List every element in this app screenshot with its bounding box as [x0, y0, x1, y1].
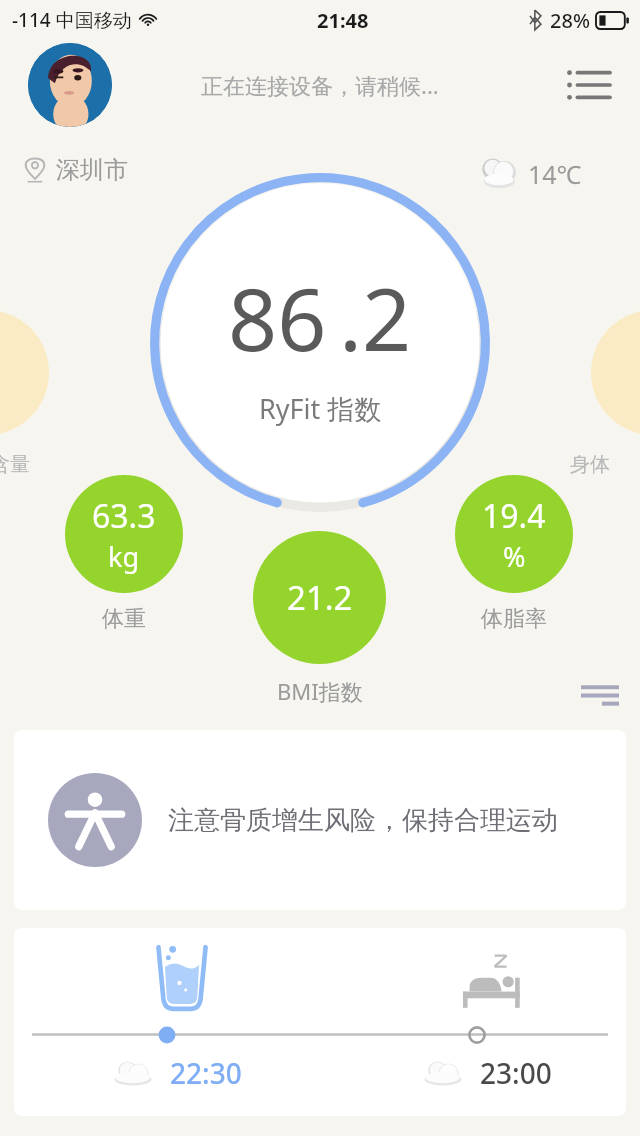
button[interactable]: 注意骨质增生风险，保持合理运动 [14, 730, 626, 910]
staticText: 正在连接设备，请稍候... [201, 70, 439, 100]
staticText: 28% [550, 7, 590, 34]
button[interactable]: 22:30 [110, 1054, 242, 1092]
staticText: 体重 [102, 605, 146, 633]
button[interactable]: 体脂率 [455, 475, 573, 593]
staticText: 深圳市 [56, 155, 128, 185]
staticText: 86 [228, 259, 327, 376]
staticText: 体脂率 [481, 605, 547, 633]
staticText: 14℃ [528, 157, 582, 191]
staticText: BMI指数 [277, 676, 363, 706]
staticText: -114 中国移动 [12, 7, 132, 33]
staticText: 23:00 [480, 1054, 552, 1092]
button[interactable]: More options [575, 675, 625, 715]
staticText: 21:48 [317, 7, 369, 34]
button[interactable]: Water reminder [132, 936, 232, 1020]
staticText: 19.4 [482, 494, 546, 538]
button[interactable]: 深圳市 [22, 155, 128, 185]
staticText: % [503, 538, 526, 575]
button[interactable]: 14℃ [478, 153, 582, 195]
button[interactable]: Profile [28, 43, 112, 127]
staticText: RyFit 指数 [259, 390, 382, 427]
button[interactable]: 23:00 [420, 1054, 552, 1092]
staticText: kg [108, 538, 140, 575]
staticText: 22:30 [170, 1054, 242, 1092]
button[interactable]: BMI指数 [253, 531, 386, 664]
staticText: .2 [339, 259, 412, 376]
staticText: 身体 [570, 452, 610, 477]
button[interactable]: Previous metric [0, 310, 49, 435]
button[interactable]: Sleep reminder [442, 940, 542, 1020]
button[interactable]: Next metric [591, 310, 640, 435]
staticText: 注意骨质增生风险，保持合理运动 [168, 804, 558, 837]
button[interactable]: Menu [558, 55, 618, 115]
staticText: 含量 [0, 452, 30, 477]
staticText: 21.2 [287, 575, 353, 620]
button[interactable]: RyFit index [150, 173, 490, 513]
staticText: 63.3 [92, 494, 156, 538]
button[interactable]: 体重 [65, 475, 183, 593]
